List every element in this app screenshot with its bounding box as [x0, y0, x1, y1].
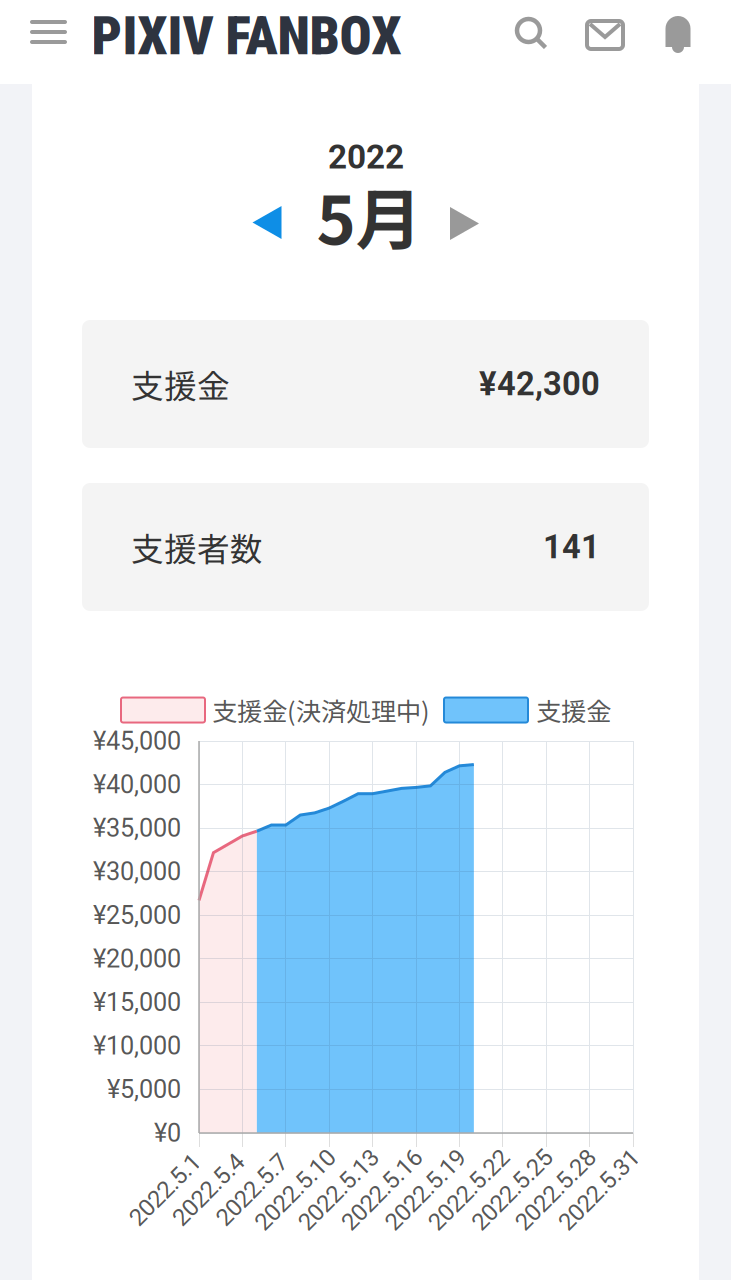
staticText: 2022.5.10 [244, 1176, 347, 1204]
staticText: ¥35,000 [93, 813, 181, 843]
button[interactable]: Menu [20, 4, 76, 60]
staticText: 2022.5.4 [163, 1176, 253, 1204]
staticText: 支援者数 [131, 523, 263, 571]
staticText: ¥15,000 [93, 987, 181, 1017]
staticText: ¥25,000 [93, 900, 181, 930]
staticText: ¥30,000 [93, 857, 181, 886]
staticText: ¥5,000 [107, 1075, 181, 1104]
staticText: PIXIV FANBOX [91, 5, 401, 67]
staticText: 2022.5.16 [330, 1176, 433, 1204]
button[interactable]: Notifications [647, 2, 709, 68]
staticText: 2022.5.7 [207, 1176, 297, 1204]
staticText: 支援金(決済処理中) [212, 692, 430, 728]
staticText: 支援金 [536, 692, 611, 728]
staticText: 2022.5.1 [120, 1176, 210, 1204]
staticText: 2022.5.31 [547, 1176, 650, 1204]
staticText: 支援金 [131, 360, 230, 408]
button[interactable]: Search [500, 0, 562, 66]
staticText: ¥20,000 [93, 944, 181, 974]
button[interactable]: Previous month [252, 206, 310, 264]
staticText: 2022.5.28 [504, 1176, 607, 1204]
staticText: ¥40,000 [93, 770, 181, 799]
staticText: ¥10,000 [93, 1031, 181, 1061]
button[interactable]: 支援者数 [82, 483, 649, 611]
staticText: 2022.5.13 [287, 1176, 390, 1204]
staticText: 141 [543, 528, 600, 566]
staticText: ¥45,000 [93, 726, 181, 756]
staticText: 2022.5.25 [461, 1176, 564, 1204]
button[interactable]: 支援金 [82, 320, 649, 448]
button[interactable]: Messages [574, 2, 636, 68]
staticText: 2022.5.19 [374, 1176, 477, 1204]
button[interactable]: Next month [450, 207, 508, 265]
staticText: 5月 [316, 167, 422, 264]
staticText: 2022 [328, 137, 404, 177]
staticText: ¥42,300 [479, 365, 600, 403]
staticText: ¥0 [154, 1118, 181, 1148]
staticText: 2022.5.22 [417, 1176, 520, 1204]
